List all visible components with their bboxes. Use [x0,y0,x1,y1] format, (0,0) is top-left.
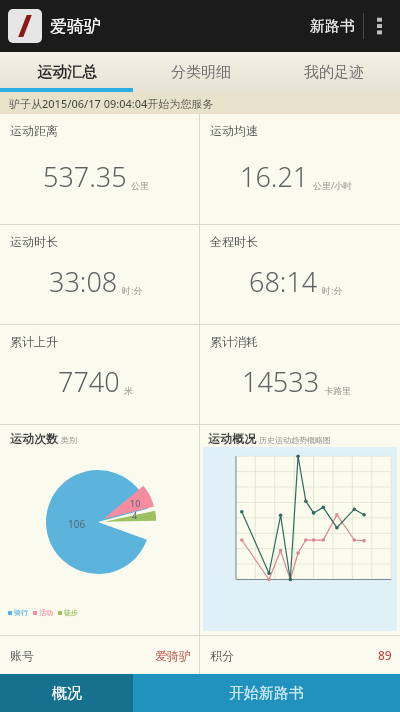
staticText: 开始新路书 [229,684,304,703]
staticText: 公里 [131,180,149,191]
staticText: 历史运动趋势概略图 [259,435,331,445]
staticText: 卡路里 [324,385,351,396]
staticText: 爱骑驴 [50,16,101,37]
staticText: 运动次数 [10,431,58,446]
staticText: 运动时长 [10,234,58,249]
staticText: 14533 [242,363,320,400]
button[interactable]: 开始新路书 [133,674,400,712]
button[interactable]: 概况 [0,674,133,712]
staticText: 时:分 [122,284,143,296]
staticText: 累计消耗 [210,334,258,349]
staticText: 运动汇总 [37,63,97,82]
button[interactable]: 累计上升 [0,325,199,424]
button[interactable]: 运动概况 [200,425,400,635]
button[interactable]: More options [364,0,394,52]
staticText: 分类明细 [171,63,231,82]
button[interactable]: App icon [8,9,42,43]
staticText: 类别 [61,435,77,445]
staticText: 徒步 [64,608,78,617]
button[interactable]: 新路书 [302,11,363,42]
staticText: 概况 [52,684,82,703]
staticText: 运动概况 [208,431,256,446]
button[interactable]: 账号 [0,636,400,674]
staticText: 106 [68,517,86,531]
staticText: 10 [130,497,141,509]
staticText: 新路书 [310,17,355,36]
staticText: 7740 [58,363,120,400]
button[interactable]: 运动距离 [0,114,199,224]
button[interactable]: 我的足迹 [267,52,400,92]
staticText: 账号 [10,648,34,663]
staticText: 我的足迹 [304,63,364,82]
staticText: 米 [124,385,133,396]
staticText: 33:08 [49,263,118,300]
staticText: 4 [132,509,138,521]
button[interactable]: 分类明细 [134,52,267,92]
staticText: 运动距离 [10,123,58,138]
staticText: 骑行 [14,608,28,617]
staticText: 89 [378,647,392,663]
staticText: 公里/小时 [313,179,353,191]
staticText: 运动均速 [210,123,258,138]
staticText: 爱骑驴 [155,648,191,663]
staticText: 16.21 [240,158,309,195]
button[interactable]: 运动次数 [0,425,199,635]
staticText: 驴子从2015/06/17 09:04:04开始为您服务 [9,96,214,111]
staticText: 537.35 [43,158,127,195]
staticText: 积分 [210,648,234,663]
button[interactable]: 运动汇总 [0,52,134,92]
staticText: 全程时长 [210,234,258,249]
button[interactable]: 累计消耗 [200,325,400,424]
staticText: 时:分 [322,284,343,296]
button[interactable]: 运动均速 [200,114,400,224]
staticText: 累计上升 [10,334,58,349]
button[interactable]: 全程时长 [200,225,400,324]
staticText: 活动 [39,608,53,617]
button[interactable]: 运动时长 [0,225,199,324]
staticText: 68:14 [249,263,318,300]
